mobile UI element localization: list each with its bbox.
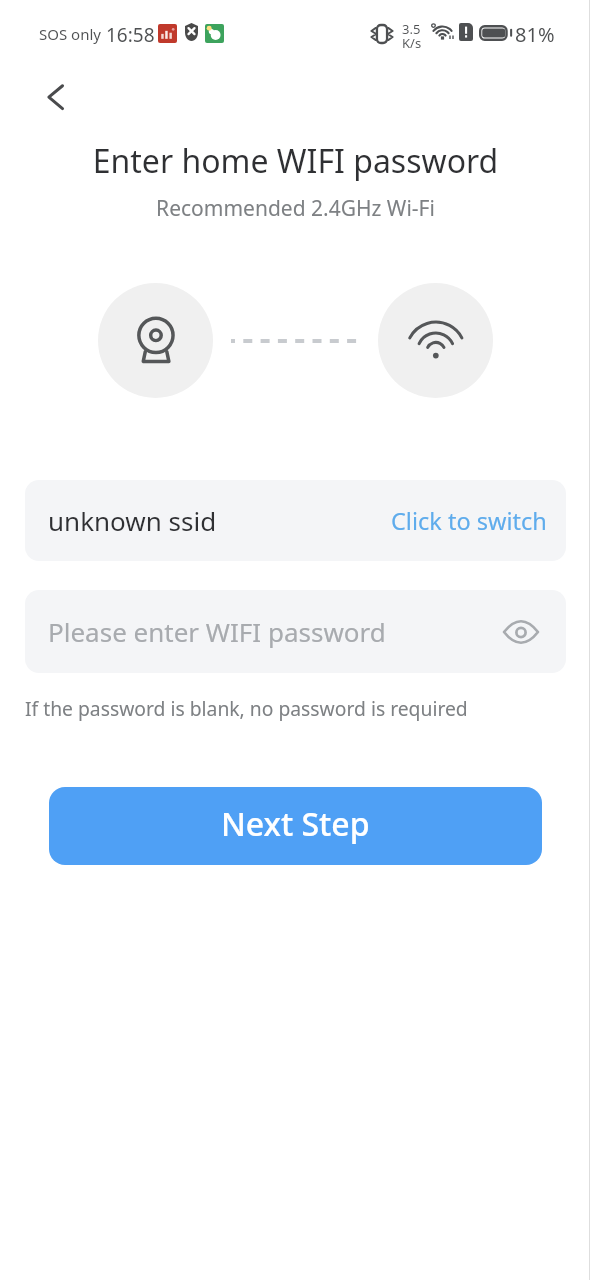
button[interactable]: unknown ssid [25, 480, 566, 561]
staticText: 3.5 [402, 20, 421, 38]
staticText: Next Step [221, 802, 370, 846]
staticText: Enter home WIFI password [0, 139, 591, 183]
staticText: SOS only [39, 24, 101, 44]
staticText: unknown ssid [48, 503, 217, 538]
button[interactable]: Back [30, 71, 82, 123]
button[interactable]: Show password [499, 610, 543, 654]
staticText: Recommended 2.4GHz Wi-Fi [0, 194, 591, 223]
staticText: Please enter WIFI password [48, 614, 386, 649]
staticText: Click to switch [391, 505, 547, 537]
staticText: 81% [515, 21, 555, 48]
staticText: K/s [402, 34, 422, 52]
button[interactable]: Next Step [49, 787, 542, 865]
staticText: If the password is blank, no password is… [25, 695, 468, 721]
staticText: 16:58 [106, 22, 155, 48]
